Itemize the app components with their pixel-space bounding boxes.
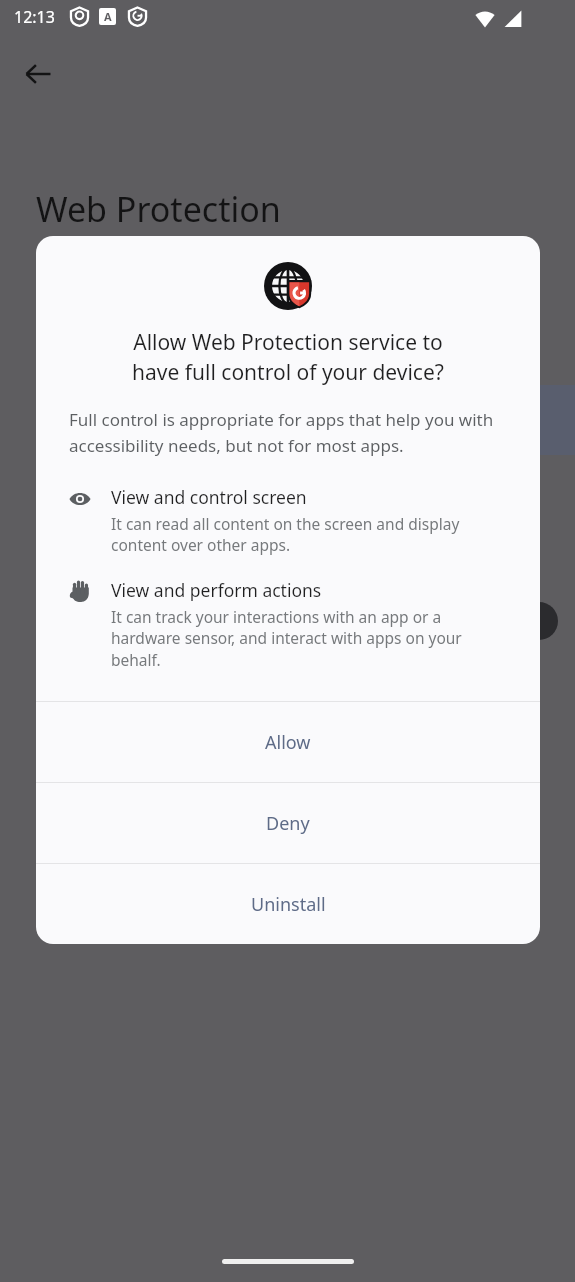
staticText: It can track your interactions with an a… [111, 606, 514, 671]
button[interactable]: Allow [36, 702, 540, 782]
button[interactable]: Deny [36, 783, 540, 863]
staticText: A [104, 9, 112, 24]
staticText: Deny [266, 811, 310, 836]
staticText: Uninstall [251, 892, 326, 917]
staticText: Full control is appropriate for apps tha… [69, 408, 514, 457]
staticText: View and control screen [111, 485, 307, 509]
button[interactable]: Uninstall [36, 864, 540, 944]
staticText: It can read all content on the screen an… [111, 513, 514, 556]
staticText: Allow Web Protection service to have ful… [58, 328, 518, 386]
staticText: 12:13 [14, 6, 55, 28]
button[interactable]: Back [14, 50, 62, 98]
staticText: Web Protection [36, 186, 281, 232]
staticText: Allow [265, 730, 311, 755]
staticText: View and perform actions [111, 578, 322, 602]
